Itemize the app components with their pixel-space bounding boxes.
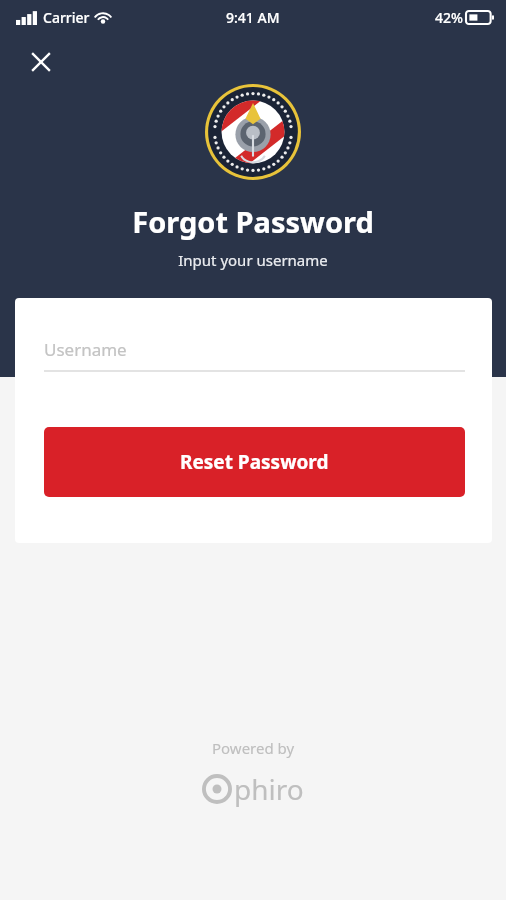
staticText: Username (44, 338, 127, 361)
button[interactable]: Reset Password (44, 427, 465, 497)
staticText: Carrier (43, 8, 90, 27)
staticText: phiro (234, 770, 304, 808)
staticText: 9:41 AM (226, 8, 280, 27)
staticText: Reset Password (180, 449, 329, 475)
staticText: 42% (435, 8, 463, 27)
button[interactable]: Username (44, 338, 465, 372)
staticText: Forgot Password (132, 202, 374, 241)
staticText: Input your username (178, 250, 328, 270)
button[interactable]: Close (23, 44, 59, 80)
staticText: Powered by (212, 738, 295, 758)
